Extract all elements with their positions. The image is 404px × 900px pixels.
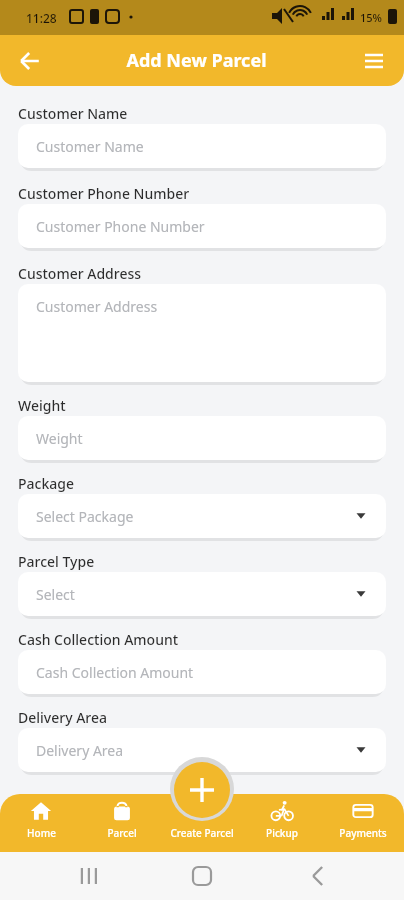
- staticText: Home: [27, 826, 56, 840]
- button[interactable]: Create Parcel: [163, 794, 241, 852]
- staticText: Parcel Type: [18, 552, 95, 571]
- staticText: Select Package: [36, 507, 134, 526]
- button[interactable]: Menu: [354, 41, 394, 81]
- staticText: Select: [36, 585, 75, 604]
- button[interactable]: Back: [10, 41, 50, 81]
- staticText: 11:28: [26, 10, 57, 26]
- staticText: Customer Address: [18, 264, 142, 283]
- staticText: Payments: [339, 826, 387, 840]
- button[interactable]: Select Package: [18, 494, 386, 538]
- button[interactable]: Payments: [324, 794, 402, 852]
- staticText: Parcel: [107, 826, 137, 840]
- staticText: 15%: [360, 10, 382, 25]
- staticText: Customer Name: [36, 137, 144, 156]
- button[interactable]: Pickup: [243, 794, 321, 852]
- staticText: Customer Address: [36, 297, 158, 316]
- staticText: Cash Collection Amount: [36, 663, 194, 682]
- staticText: Delivery Area: [36, 741, 124, 760]
- button[interactable]: Create Parcel: [174, 762, 230, 818]
- button[interactable]: Weight: [18, 416, 386, 460]
- staticText: Weight: [18, 396, 66, 415]
- button[interactable]: Customer Name: [18, 124, 386, 168]
- staticText: Customer Phone Number: [18, 184, 190, 203]
- staticText: Weight: [36, 429, 83, 448]
- button[interactable]: Delivery Area: [18, 728, 386, 772]
- button[interactable]: Customer Address: [18, 284, 386, 382]
- button[interactable]: Select: [18, 572, 386, 616]
- staticText: Package: [18, 474, 74, 493]
- staticText: Create Parcel: [170, 826, 234, 840]
- button[interactable]: Home: [2, 794, 80, 852]
- staticText: Add New Parcel: [126, 48, 267, 73]
- staticText: Cash Collection Amount: [18, 630, 179, 649]
- button[interactable]: Customer Phone Number: [18, 204, 386, 248]
- staticText: Pickup: [266, 826, 298, 840]
- staticText: Delivery Area: [18, 708, 108, 727]
- staticText: Customer Phone Number: [36, 217, 205, 236]
- staticText: Customer Name: [18, 104, 128, 123]
- button[interactable]: Parcel: [83, 794, 161, 852]
- button[interactable]: Cash Collection Amount: [18, 650, 386, 694]
